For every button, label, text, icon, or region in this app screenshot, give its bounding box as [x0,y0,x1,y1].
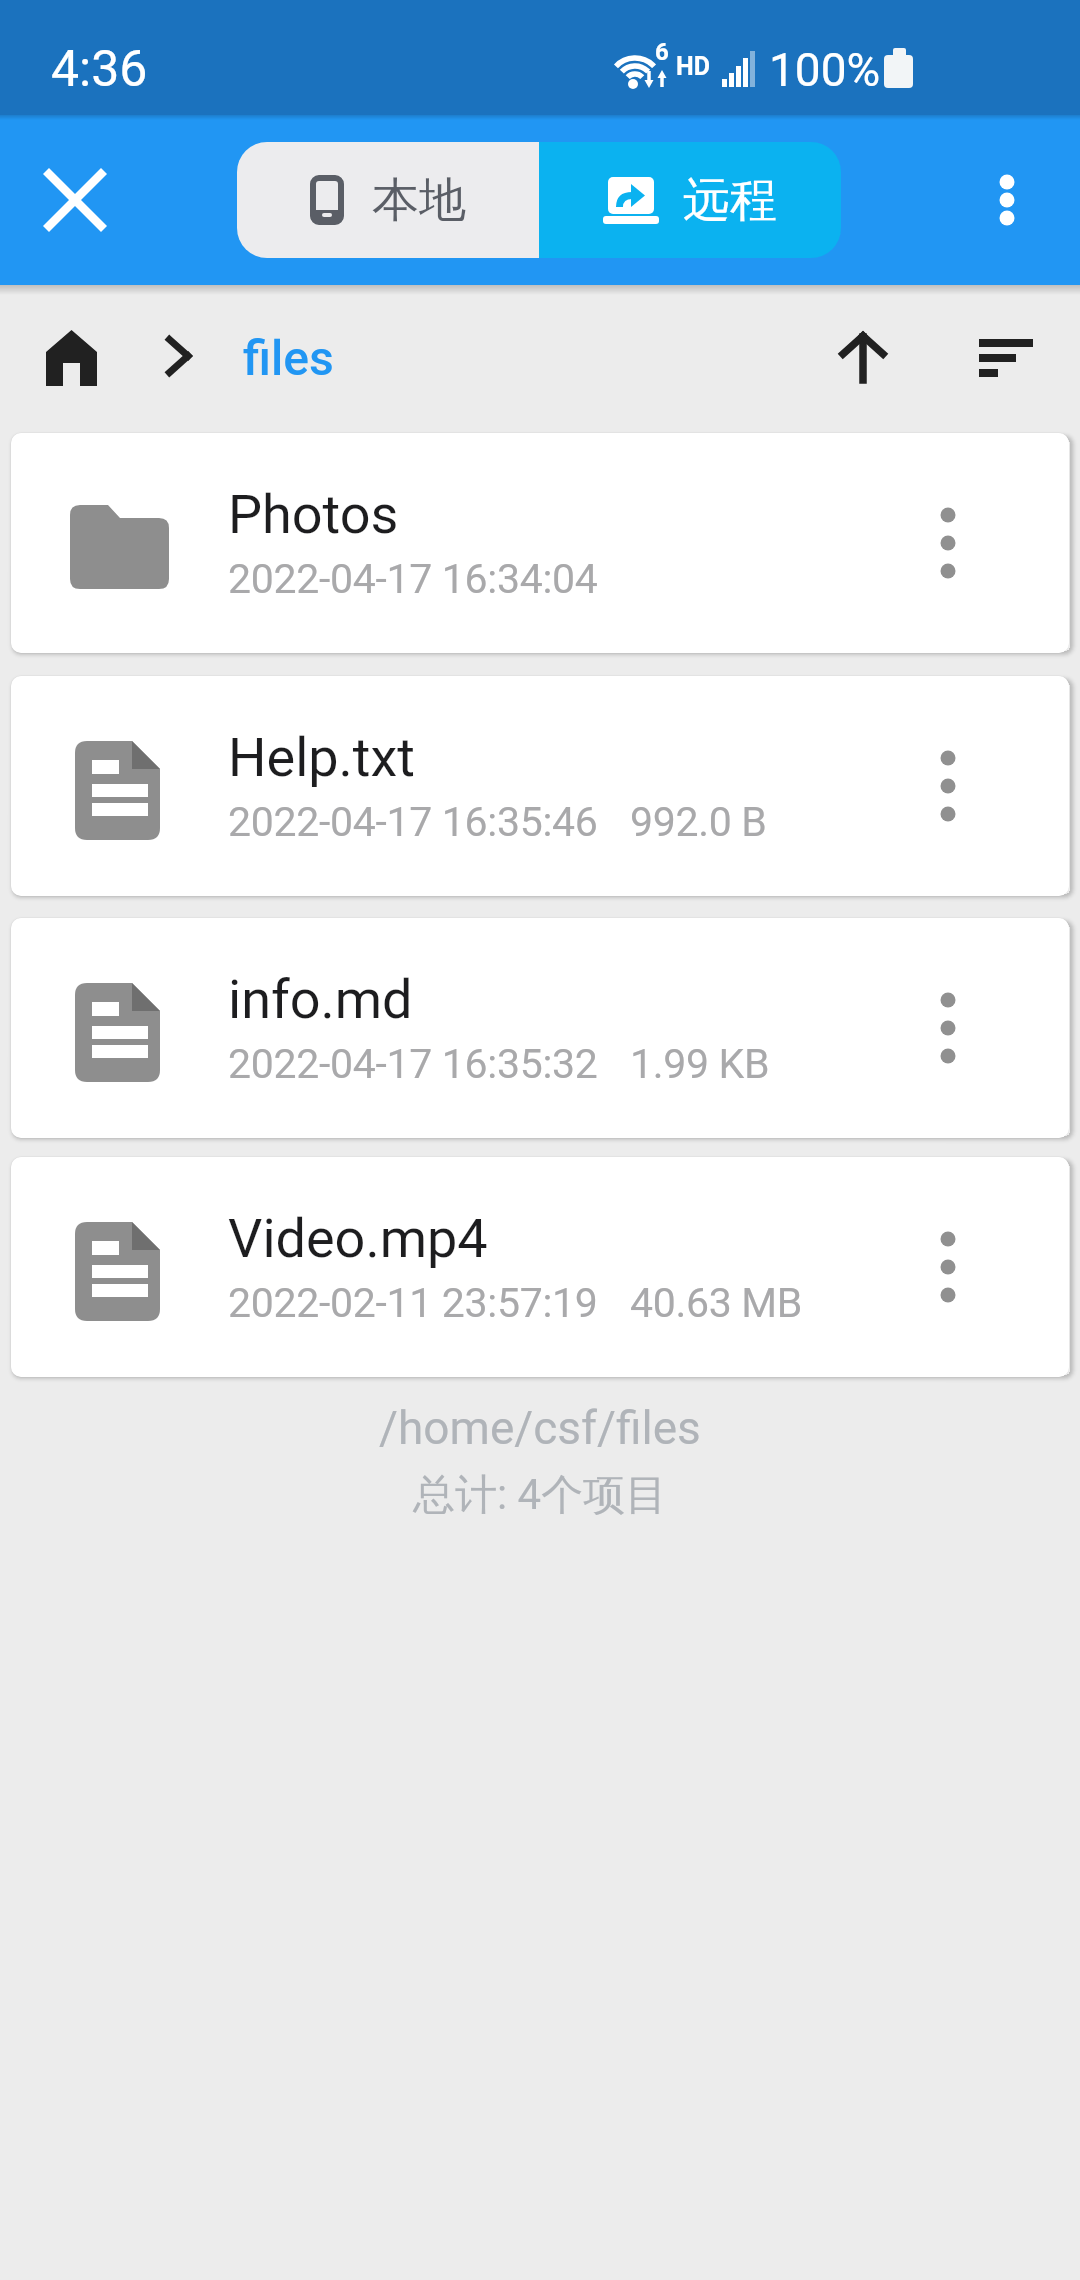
staticText: 4:36 [51,40,148,99]
button[interactable]: files [243,330,334,386]
button[interactable] [904,499,992,587]
button[interactable] [830,325,896,391]
button[interactable] [904,984,992,1072]
staticText: 2022-04-17 16:35:32 [228,1040,598,1088]
button[interactable] [904,742,992,830]
button[interactable] [966,325,1046,391]
staticText: 1.99 KB [630,1040,770,1088]
button[interactable] [963,156,1051,244]
staticText: files [243,330,334,386]
staticText: 远程 [683,171,777,230]
staticText: Help.txt [228,726,415,789]
button[interactable]: 远程 [539,142,841,258]
button[interactable]: Photos [11,433,1069,653]
staticText: 40.63 MB [630,1279,803,1327]
staticText: 本地 [372,171,466,230]
staticText: Video.mp4 [228,1207,488,1270]
staticText: HD [676,52,710,81]
staticText: 100% [769,43,881,97]
staticText: Photos [228,483,399,546]
staticText: 总计: 4个项目 [413,1469,668,1522]
button[interactable]: Help.txt [11,676,1069,896]
button[interactable]: info.md [11,918,1069,1138]
button[interactable]: 本地 [237,142,539,258]
staticText: 2022-04-17 16:34:04 [228,555,598,603]
button[interactable] [31,156,119,244]
staticText: 2022-02-11 23:57:19 [228,1279,598,1327]
button[interactable] [38,325,104,391]
staticText: 6 [655,38,669,66]
staticText: /home/csf/files [379,1401,701,1455]
button[interactable]: Video.mp4 [11,1157,1069,1377]
staticText: info.md [228,968,413,1031]
staticText: 2022-04-17 16:35:46 [228,798,598,846]
button[interactable] [904,1223,992,1311]
staticText: 992.0 B [630,798,767,846]
